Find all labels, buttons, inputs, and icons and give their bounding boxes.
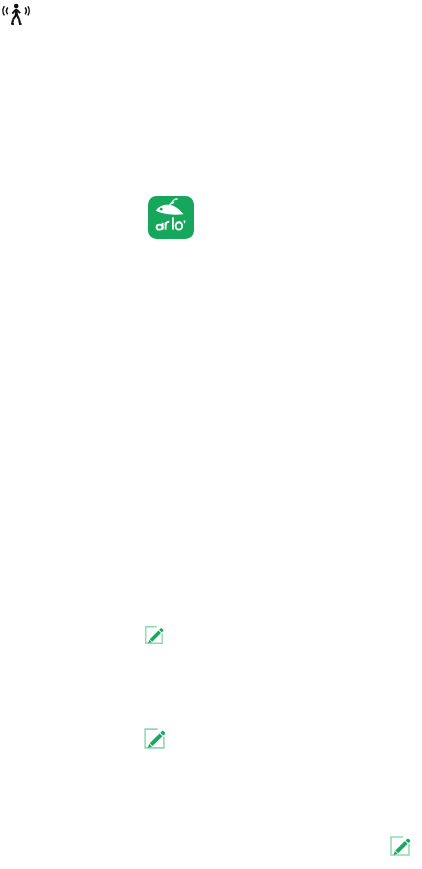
button[interactable]: Edit: [388, 834, 412, 858]
button[interactable]: Edit: [143, 624, 165, 646]
button[interactable]: Edit: [142, 726, 167, 751]
button[interactable]: Motion detection: [2, 3, 30, 26]
button[interactable]: Arlo: [148, 196, 194, 239]
